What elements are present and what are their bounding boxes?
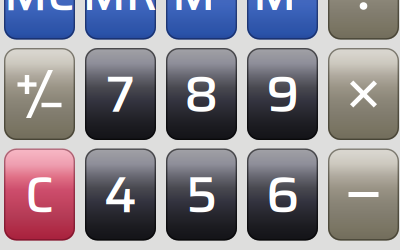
staticText: MR bbox=[82, 0, 158, 31]
button[interactable]: Divide bbox=[328, 0, 399, 39]
staticText: MC bbox=[4, 0, 75, 31]
staticText: 7 bbox=[106, 54, 135, 134]
button[interactable]: 5 bbox=[166, 148, 237, 240]
staticText: 5 bbox=[186, 155, 217, 234]
button[interactable]: 9 bbox=[247, 48, 318, 140]
button[interactable]: 7 bbox=[85, 48, 156, 140]
staticText: 4 bbox=[104, 155, 137, 234]
button[interactable]: Memory add bbox=[247, 0, 318, 39]
staticText: C bbox=[25, 155, 54, 234]
button[interactable]: Multiply bbox=[328, 48, 399, 140]
button[interactable]: 6 bbox=[247, 148, 318, 240]
staticText: M bbox=[172, 0, 215, 31]
button[interactable]: Plus minus bbox=[4, 48, 75, 140]
button[interactable]: 8 bbox=[166, 48, 237, 140]
staticText: M bbox=[253, 0, 296, 31]
staticText: 8 bbox=[184, 54, 219, 134]
button[interactable]: Memory subtract bbox=[166, 0, 237, 39]
button[interactable]: C bbox=[4, 148, 75, 240]
button[interactable]: MR bbox=[85, 0, 156, 39]
button[interactable]: Subtract bbox=[328, 148, 399, 240]
button[interactable]: 4 bbox=[85, 148, 156, 240]
staticText: 9 bbox=[266, 54, 299, 134]
staticText: 6 bbox=[266, 155, 299, 234]
button[interactable]: MC bbox=[4, 0, 75, 39]
